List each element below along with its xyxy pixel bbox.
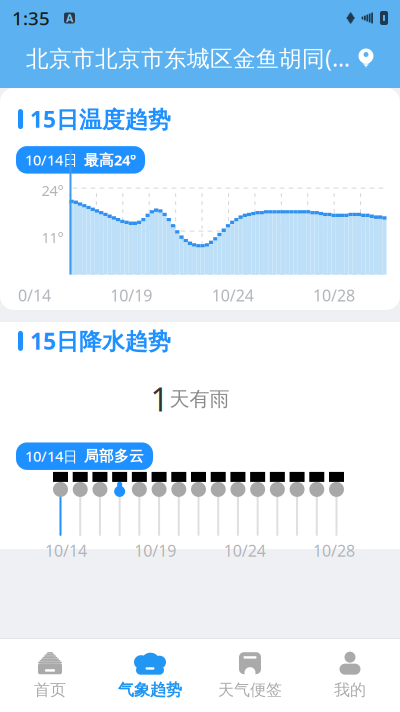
staticText: 首页 [34,680,66,700]
staticText: 10/28 [313,540,355,561]
staticText: 天气便签 [218,680,282,700]
staticText: 10/28 [313,285,355,306]
staticText: 北京市北京市东城区金鱼胡同(… [26,43,350,73]
staticText: 1 [150,378,168,420]
staticText: 10/19 [110,285,152,306]
staticText: 局部多云 [84,447,144,465]
button[interactable]: 北京市北京市东城区金鱼胡同(… [0,32,400,84]
staticText: 10/14日 [25,446,78,466]
staticText: 1:35 [12,6,50,30]
staticText: A [66,11,73,25]
staticText: 0/14 [18,285,51,306]
staticText: 15日降水趋势 [30,326,171,356]
staticText: 10/24 [212,285,254,306]
staticText: 气象趋势 [118,680,182,700]
button[interactable]: 首页 [0,644,100,706]
staticText: 11° [41,228,63,247]
button[interactable]: 我的 [300,644,400,706]
button[interactable]: 气象趋势 [100,644,200,706]
staticText: 10/14日 [25,150,78,170]
staticText: 10/14 [45,540,87,561]
staticText: 10/24 [224,540,266,561]
button[interactable]: 天气便签 [200,644,300,706]
staticText: 10/19 [134,540,176,561]
staticText: 天有雨 [169,387,229,411]
staticText: 15日温度趋势 [30,104,171,134]
staticText: 24° [41,181,63,200]
staticText: 最高24° [84,150,136,170]
staticText: 我的 [334,680,366,700]
